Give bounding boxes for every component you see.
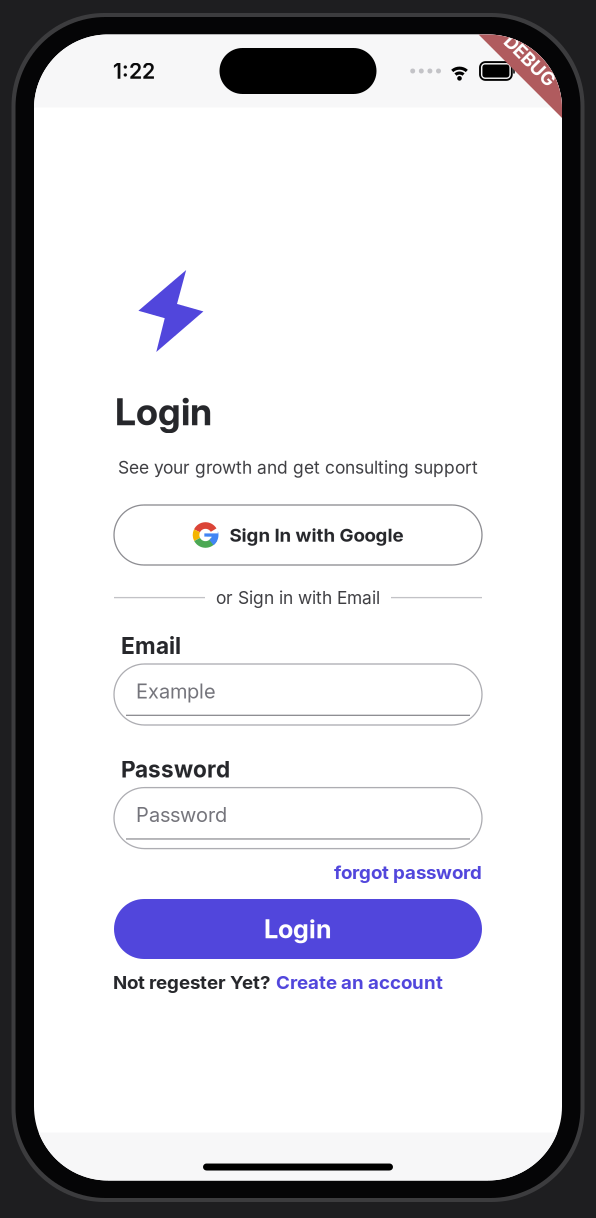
staticText: Password — [136, 803, 227, 827]
staticText: Login — [115, 389, 212, 434]
button[interactable]: Login — [114, 899, 482, 959]
staticText: Example — [136, 679, 216, 703]
button[interactable]: Create an account — [276, 971, 443, 994]
staticText: Email — [121, 632, 181, 659]
button[interactable]: Password — [114, 788, 482, 849]
staticText: See your growth and get consulting suppo… — [118, 457, 478, 478]
staticText: or Sign in with Email — [216, 587, 380, 608]
button[interactable]: Example — [114, 664, 482, 725]
staticText: forgot password — [334, 861, 482, 884]
staticText: Login — [264, 914, 332, 944]
staticText: Sign In with Google — [229, 524, 403, 546]
staticText: 1:22 — [113, 58, 155, 84]
staticText: Password — [121, 756, 230, 783]
staticText: Not regester Yet? — [113, 971, 270, 994]
button[interactable]: Sign In with Google — [114, 505, 482, 565]
staticText: Create an account — [276, 971, 443, 994]
button[interactable]: forgot password — [334, 861, 482, 884]
staticText: DEBUG — [498, 49, 562, 72]
